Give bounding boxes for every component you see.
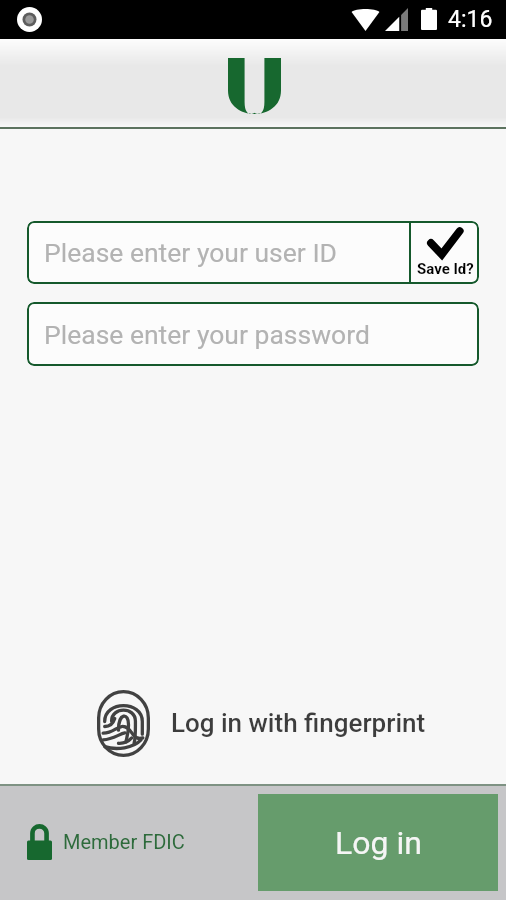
staticText: Log in — [335, 824, 422, 862]
button[interactable]: Log in — [258, 794, 498, 891]
staticText: Save Id? — [417, 260, 474, 278]
other: Bank logo — [228, 58, 281, 116]
other: Log in with fingerprint — [97, 690, 150, 757]
staticText: Member FDIC — [63, 830, 185, 853]
button[interactable]: Save Id? — [411, 221, 479, 284]
other: Member FDIC — [27, 823, 52, 860]
button[interactable]: Log in with fingerprint — [97, 688, 426, 758]
button[interactable]: Member FDIC — [27, 808, 185, 874]
button[interactable]: Please enter your password — [27, 302, 479, 366]
button[interactable]: Please enter your user ID — [27, 221, 409, 284]
staticText: Log in with fingerprint — [171, 708, 426, 738]
staticText: Please enter your password — [44, 319, 370, 350]
staticText: Please enter your user ID — [44, 237, 338, 268]
staticText: 4:16 — [448, 6, 493, 33]
